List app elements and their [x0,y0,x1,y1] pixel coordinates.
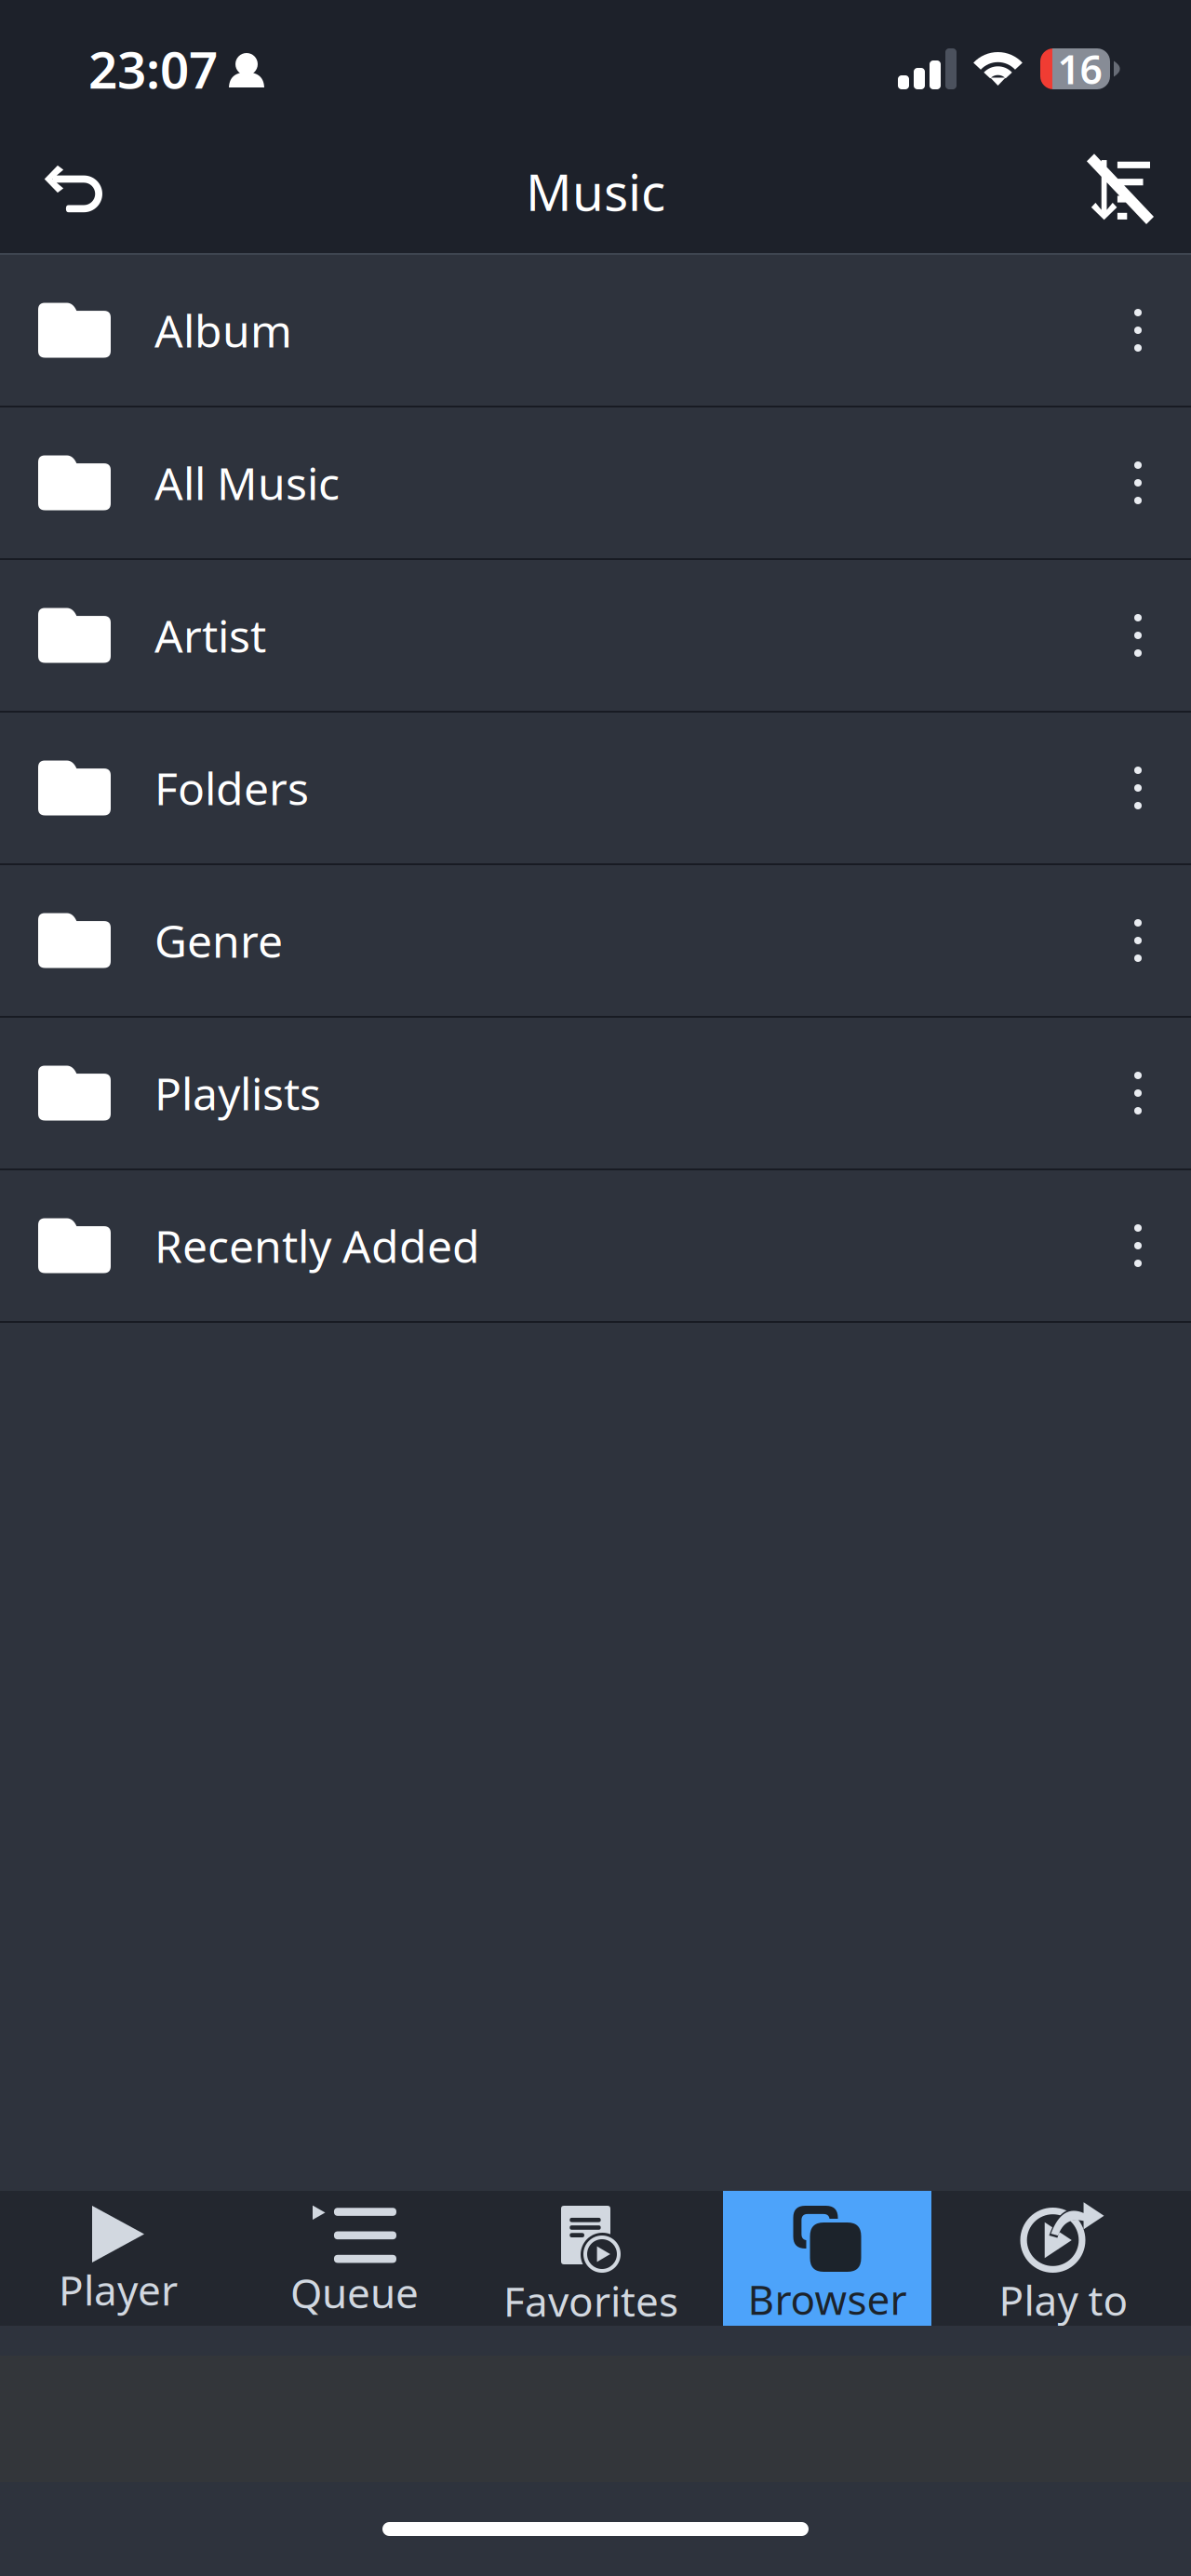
button[interactable]: Genre [0,865,1191,1018]
staticText: Play to [999,2273,1128,2327]
button[interactable]: Album [0,255,1191,407]
staticText: Album [154,301,292,360]
button[interactable]: Sort order off [1069,145,1174,246]
button[interactable]: Playlists [0,1018,1191,1170]
staticText: Folders [154,758,309,818]
staticText: Playlists [154,1063,321,1123]
button[interactable]: Artist [0,560,1191,713]
staticText: All Music [154,453,340,512]
staticText: Player [59,2262,178,2317]
button[interactable]: Queue [236,2191,473,2326]
button[interactable]: All Music [0,407,1191,560]
button[interactable]: Favorites [473,2191,709,2326]
button[interactable]: Folders [0,713,1191,865]
button[interactable]: Recently Added [0,1170,1191,1323]
staticText: 23:07 [88,35,218,103]
button[interactable]: Back [19,137,124,254]
staticText: Favorites [503,2274,678,2328]
staticText: Artist [154,606,266,665]
button[interactable]: Play to [945,2191,1182,2326]
staticText: Music [526,157,665,225]
staticText: Queue [290,2265,419,2320]
staticText: Browser [748,2272,907,2326]
staticText: Genre [154,911,283,970]
staticText: 16 [1057,43,1102,95]
button[interactable]: Player [0,2191,236,2326]
staticText: Recently Added [154,1216,480,1275]
button[interactable]: Browser [709,2191,945,2326]
